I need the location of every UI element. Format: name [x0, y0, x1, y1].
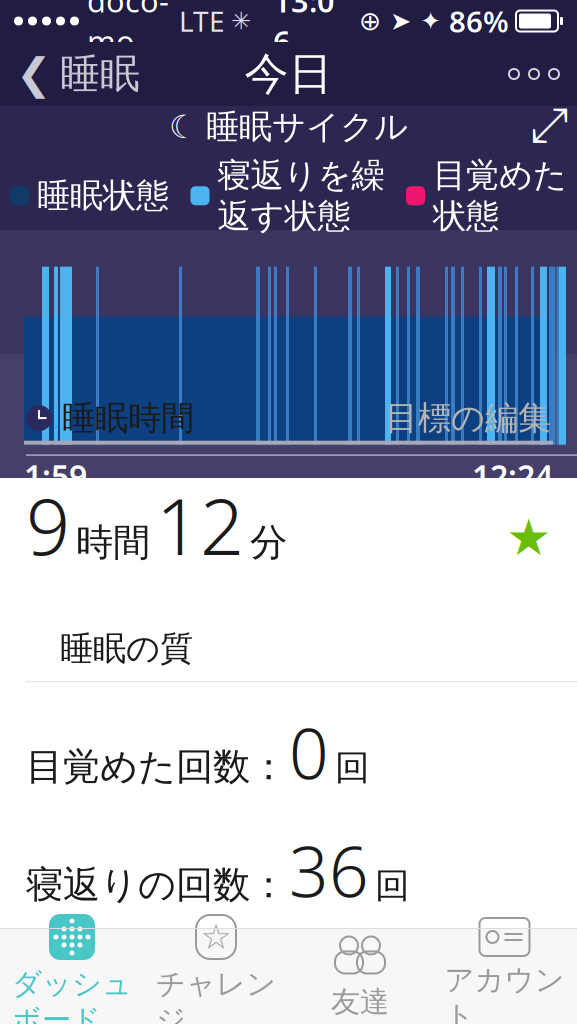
button[interactable]: Expand chart — [521, 102, 577, 152]
staticText: 時間 — [76, 520, 150, 565]
button[interactable]: ダッシュボード — [0, 928, 144, 1024]
staticText: 36 — [289, 824, 369, 916]
button[interactable]: ❮ — [0, 42, 156, 106]
staticText: ⤢ — [530, 103, 568, 150]
staticText: ➤ — [390, 7, 411, 35]
staticText: 寝返りを繰返す状態 — [217, 155, 384, 237]
staticText: 目覚めた回数： — [26, 744, 287, 790]
button[interactable]: ☆ — [144, 928, 288, 1024]
button[interactable]: More options — [491, 42, 577, 106]
staticText: 友達 — [331, 984, 389, 1020]
button[interactable]: 目標の編集 — [385, 392, 551, 444]
staticText: LTE — [179, 2, 225, 40]
staticText: 睡眠の質 — [60, 628, 193, 669]
staticText: 睡眠時間 — [62, 398, 194, 438]
staticText: docomo — [87, 0, 169, 62]
staticText: ★ — [506, 509, 551, 566]
staticText: 分 — [250, 520, 287, 565]
staticText: 86% — [449, 1, 509, 40]
staticText: ✳ — [231, 7, 251, 35]
staticText: 睡眠サイクル — [206, 106, 408, 147]
button[interactable]: アカウント — [432, 928, 577, 1024]
staticText: 13 — [144, 942, 224, 1024]
staticText: ☾ — [169, 109, 198, 145]
staticText: 1:59 — [24, 455, 87, 497]
staticText: 回 — [375, 864, 410, 907]
staticText: 12 — [156, 474, 244, 576]
staticText: 睡眠 — [60, 49, 140, 98]
staticText: ✦ — [420, 7, 441, 35]
button[interactable]: 友達 — [288, 928, 432, 1024]
staticText: チャレンジ — [156, 966, 276, 1024]
staticText: 0 — [289, 706, 329, 798]
staticText: 回 — [335, 746, 370, 789]
staticText: 目覚めた状態/寝返りを繰返す — [273, 936, 566, 1024]
staticText: 目覚めた状態 — [433, 155, 567, 237]
staticText: 時間 — [70, 982, 140, 1024]
staticText: 12:24 — [472, 455, 553, 497]
staticText: ダッシュボード — [12, 966, 132, 1024]
staticText: アカウント — [444, 962, 564, 1024]
staticText: 1 — [26, 942, 66, 1024]
staticText: 睡眠状態 — [37, 175, 169, 216]
staticText: ☆ — [200, 917, 231, 957]
staticText: 9 — [26, 474, 70, 576]
staticText: 今日 — [244, 47, 332, 101]
staticText: 分 — [230, 982, 265, 1024]
staticText: 寝返りの回数： — [26, 862, 287, 908]
staticText: ❮ — [16, 50, 52, 98]
staticText: 13:06 — [273, 0, 335, 62]
staticText: 目標の編集 — [385, 398, 551, 438]
staticText: ⊕ — [359, 6, 381, 36]
